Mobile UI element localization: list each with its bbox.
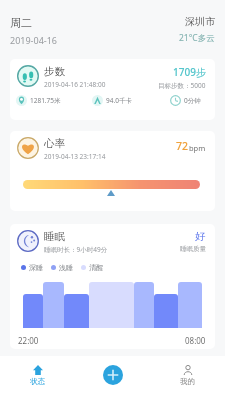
staticText: 步数 [44,65,65,78]
button[interactable]: 心率 [10,131,215,211]
staticText: 睡眠 [44,230,65,243]
button[interactable]: 状态 [0,356,75,400]
button[interactable]: Add [103,365,123,385]
staticText: 深圳市 [185,15,215,28]
staticText: 我的 [180,377,195,386]
staticText: 2019-04-16 [10,34,57,46]
staticText: 清醒 [89,263,103,272]
button[interactable]: 我的 [150,356,225,400]
staticText: 0分钟 [184,96,201,105]
staticText: 21°C多云 [179,32,215,44]
staticText: 1709步 [173,65,206,79]
staticText: 目标步数：5000 [158,81,206,90]
staticText: 浅睡 [59,263,73,272]
staticText: 好 [195,230,206,243]
staticText: 2019-04-13 23:17:14 [44,152,106,161]
staticText: 状态 [30,377,45,386]
staticText: bpm [189,143,206,153]
staticText: 睡眠时长：9小时49分 [44,245,108,254]
staticText: 1281.75米 [30,96,61,105]
staticText: 22:00 [18,335,39,346]
staticText: 睡眠质量 [180,245,206,253]
staticText: 72 [176,139,189,153]
staticText: 心率 [44,137,65,150]
staticText: 08:00 [185,335,206,346]
staticText: 周二 [10,16,32,30]
staticText: 深睡 [29,263,43,272]
button[interactable]: 睡眠 [10,224,215,349]
staticText: 94.0千卡 [106,96,132,105]
button[interactable]: 步数 [10,59,215,120]
staticText: 2019-04-16 21:48:00 [44,80,106,89]
